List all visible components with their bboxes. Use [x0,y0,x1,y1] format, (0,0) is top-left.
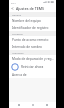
staticText: Ajustes de TEMS [16,6,54,11]
staticText: 9:41 [11,1,16,4]
button[interactable]: Acerca de [9,71,56,78]
staticText: Identificador de registro [12,26,49,30]
staticText: Intervalo de sondeo [12,45,42,49]
staticText: Punto de acceso remoto [12,38,49,42]
button[interactable]: Intervalo de sondeo [9,43,56,50]
staticText: Reiniciar ahora [21,65,54,69]
button[interactable]: Recent apps [42,102,51,108]
button[interactable]: Punto de acceso remoto [9,36,56,43]
staticText: General [12,13,22,16]
staticText: Conexión [12,32,24,35]
button[interactable]: Identificador de registro [9,24,56,31]
staticText: Avanzado [12,51,24,54]
staticText: Modo de depuración y registro detallado [12,57,54,61]
button[interactable]: Back [9,4,16,12]
button[interactable]: Nombre del equipo [9,17,56,24]
button[interactable]: Modo de depuración y registro detallado [9,55,56,62]
button[interactable]: Home [28,102,37,108]
button[interactable]: Back [14,102,23,108]
button[interactable]: Reiniciar ahora [9,62,56,71]
staticText: Nombre del equipo [12,19,42,23]
staticText: Acerca de [12,73,27,77]
